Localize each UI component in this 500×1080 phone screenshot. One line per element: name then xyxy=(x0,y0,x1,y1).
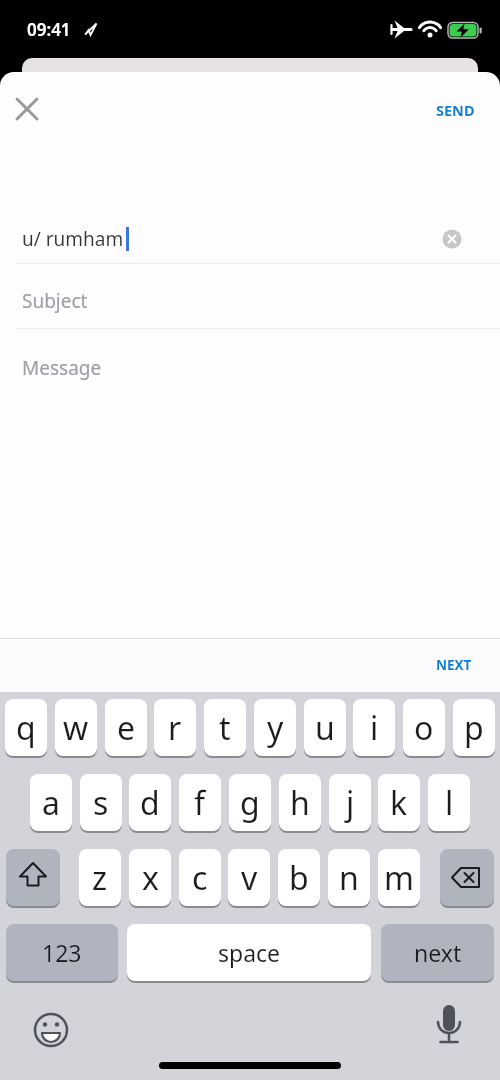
button[interactable]: r xyxy=(154,699,196,756)
button[interactable]: j xyxy=(329,774,371,831)
button[interactable] xyxy=(8,90,46,128)
staticText: 123 xyxy=(42,937,82,968)
staticText: t xyxy=(219,706,231,750)
button[interactable]: s xyxy=(80,774,122,831)
staticText: w xyxy=(63,706,89,750)
staticText: s xyxy=(93,781,109,825)
staticText: next xyxy=(414,937,462,968)
staticText: b xyxy=(289,856,309,900)
button[interactable]: i xyxy=(353,699,395,756)
button[interactable]: w xyxy=(55,699,97,756)
staticText: h xyxy=(290,781,310,825)
button[interactable]: b xyxy=(278,849,320,906)
staticText: n xyxy=(339,856,359,900)
staticText: f xyxy=(194,781,206,825)
button[interactable]: space xyxy=(127,924,371,981)
staticText: Subject xyxy=(22,288,88,314)
staticText: NEXT xyxy=(436,656,472,674)
staticText: i xyxy=(370,706,379,750)
button[interactable]: x xyxy=(129,849,171,906)
button[interactable]: l xyxy=(428,774,470,831)
button[interactable]: e xyxy=(105,699,147,756)
button[interactable]: SEND xyxy=(424,96,486,124)
button[interactable]: h xyxy=(279,774,321,831)
button[interactable] xyxy=(442,229,462,249)
button[interactable]: a xyxy=(30,774,72,831)
staticText: y xyxy=(267,706,284,750)
staticText: r xyxy=(168,706,182,750)
staticText: m xyxy=(384,856,414,900)
staticText: v xyxy=(241,856,258,900)
button[interactable]: d xyxy=(129,774,171,831)
staticText: q xyxy=(16,706,36,750)
staticText: space xyxy=(218,937,281,968)
button[interactable]: q xyxy=(5,699,47,756)
button[interactable]: o xyxy=(403,699,445,756)
staticText: a xyxy=(42,781,60,825)
button[interactable] xyxy=(6,849,60,906)
staticText: o xyxy=(414,706,434,750)
staticText: 09:41 xyxy=(27,18,71,41)
staticText: z xyxy=(92,856,108,900)
button[interactable]: f xyxy=(179,774,221,831)
button[interactable]: g xyxy=(229,774,271,831)
button[interactable]: p xyxy=(453,699,495,756)
staticText: SEND xyxy=(436,100,475,120)
staticText: l xyxy=(445,781,454,825)
staticText: e xyxy=(117,706,136,750)
button[interactable]: k xyxy=(378,774,420,831)
button[interactable]: z xyxy=(79,849,121,906)
button[interactable] xyxy=(440,849,494,906)
staticText: k xyxy=(390,781,408,825)
staticText: c xyxy=(192,856,208,900)
button[interactable]: m xyxy=(378,849,420,906)
staticText: Message xyxy=(22,355,102,381)
staticText: x xyxy=(142,856,159,900)
button[interactable]: NEXT xyxy=(428,652,480,678)
staticText: u xyxy=(315,706,335,750)
button[interactable]: y xyxy=(254,699,296,756)
staticText: u/ rumham xyxy=(22,226,124,252)
button[interactable]: n xyxy=(328,849,370,906)
staticText: g xyxy=(240,781,260,825)
staticText: j xyxy=(346,781,355,825)
button[interactable]: 123 xyxy=(6,924,118,981)
staticText: d xyxy=(140,781,160,825)
button[interactable]: t xyxy=(204,699,246,756)
button[interactable]: c xyxy=(179,849,221,906)
staticText: p xyxy=(464,706,484,750)
button[interactable]: u xyxy=(304,699,346,756)
button[interactable]: v xyxy=(228,849,270,906)
button[interactable]: next xyxy=(381,924,494,981)
